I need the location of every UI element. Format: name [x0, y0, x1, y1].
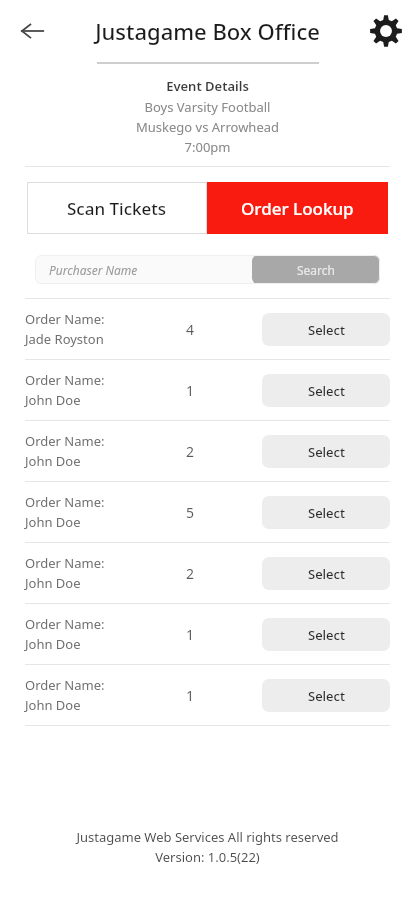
button[interactable]: Select: [262, 435, 390, 468]
button[interactable]: Order Lookup: [207, 182, 388, 234]
staticText: Order Lookup: [241, 197, 354, 220]
button[interactable]: Select: [262, 618, 390, 651]
button[interactable]: Settings: [365, 10, 407, 52]
staticText: 5: [186, 503, 195, 522]
staticText: Order Name:: [25, 676, 105, 694]
staticText: John Doe: [25, 452, 81, 470]
staticText: Search: [297, 262, 335, 278]
staticText: John Doe: [25, 696, 81, 714]
staticText: Justagame Web Services All rights reserv…: [0, 828, 415, 846]
staticText: Order Name:: [25, 554, 105, 572]
button[interactable]: Purchaser Name: [35, 255, 252, 284]
staticText: John Doe: [25, 635, 81, 653]
staticText: Select: [308, 626, 345, 644]
staticText: Order Name:: [25, 493, 105, 511]
staticText: Select: [308, 382, 345, 400]
staticText: 2: [186, 442, 195, 461]
button[interactable]: Select: [262, 496, 390, 529]
staticText: 1: [186, 625, 195, 644]
staticText: Jade Royston: [25, 330, 104, 348]
staticText: John Doe: [25, 574, 81, 592]
staticText: Select: [308, 321, 345, 339]
staticText: Select: [308, 504, 345, 522]
staticText: Version: 1.0.5(22): [0, 848, 415, 866]
staticText: 4: [186, 320, 195, 339]
staticText: Order Name:: [25, 615, 105, 633]
staticText: John Doe: [25, 513, 81, 531]
staticText: John Doe: [25, 391, 81, 409]
staticText: Order Name:: [25, 371, 105, 389]
staticText: Boys Varsity Football: [0, 98, 415, 116]
staticText: Muskego vs Arrowhead: [0, 118, 415, 136]
staticText: Scan Tickets: [67, 197, 167, 220]
button[interactable]: Select: [262, 313, 390, 346]
button[interactable]: Select: [262, 557, 390, 590]
button[interactable]: Scan Tickets: [27, 182, 207, 234]
staticText: Select: [308, 687, 345, 705]
staticText: Order Name:: [25, 432, 105, 450]
staticText: 1: [186, 686, 195, 705]
staticText: Justagame Box Office: [95, 16, 320, 46]
button[interactable]: Back: [12, 11, 52, 51]
button[interactable]: Search: [252, 255, 380, 284]
staticText: Order Name:: [25, 310, 105, 328]
button[interactable]: Select: [262, 679, 390, 712]
staticText: 7:00pm: [0, 138, 415, 156]
staticText: Purchaser Name: [49, 262, 138, 278]
staticText: 1: [186, 381, 195, 400]
button[interactable]: Select: [262, 374, 390, 407]
staticText: Event Details: [0, 77, 415, 95]
staticText: 2: [186, 564, 195, 583]
staticText: Select: [308, 443, 345, 461]
staticText: Select: [308, 565, 345, 583]
